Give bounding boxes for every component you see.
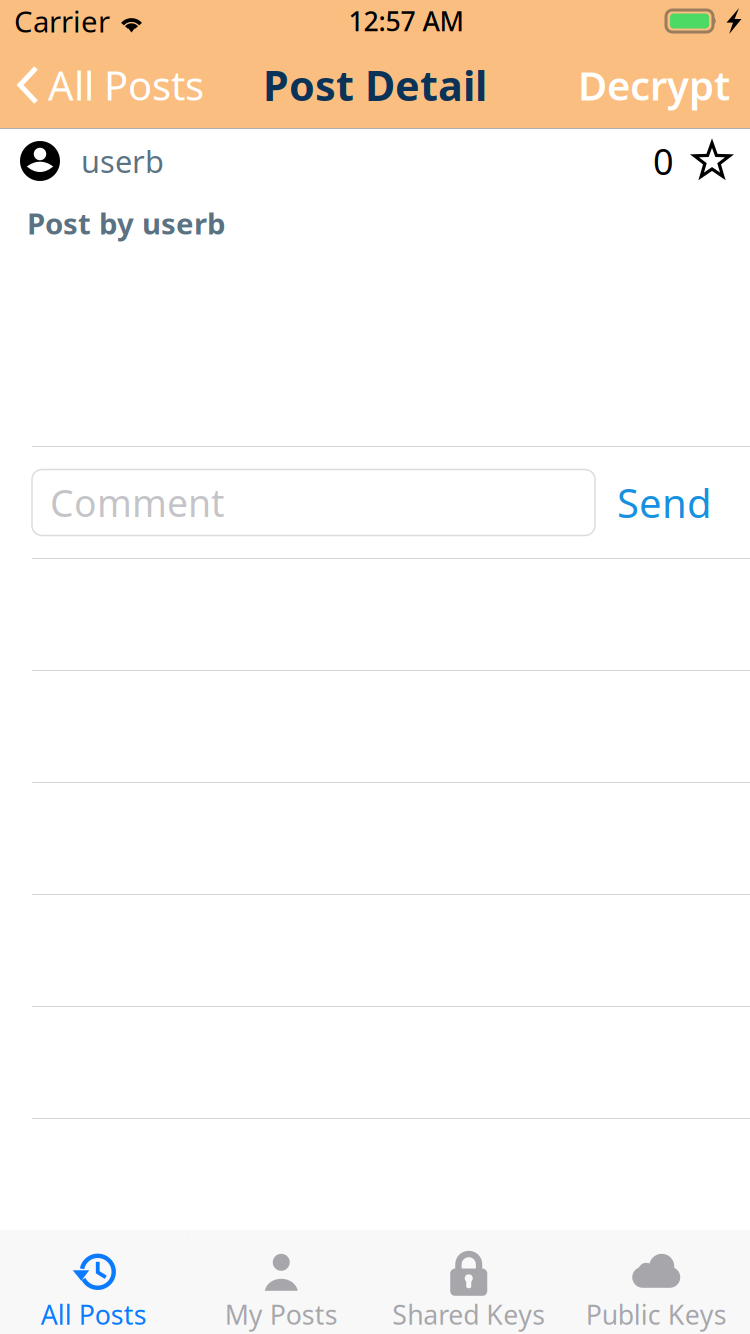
staticText: Carrier (14, 1, 110, 40)
staticText: 0 (653, 137, 674, 185)
staticText: Send (617, 476, 712, 529)
staticText: Comment (50, 478, 224, 527)
button[interactable]: All Posts (0, 50, 204, 119)
staticText: 12:57 AM (348, 3, 463, 39)
button[interactable]: My Posts (187, 1234, 375, 1334)
button[interactable]: Shared Keys (375, 1234, 562, 1334)
staticText: userb (81, 141, 164, 181)
button[interactable]: Send (617, 476, 712, 529)
staticText: All Posts (41, 1297, 147, 1332)
staticText: Shared Keys (392, 1297, 545, 1332)
staticText: Post by userb (27, 203, 226, 242)
staticText: My Posts (225, 1297, 338, 1332)
button[interactable]: All Posts (0, 1234, 187, 1334)
button[interactable]: Decrypt (578, 50, 750, 119)
button[interactable]: Favourite post (692, 141, 732, 181)
staticText: Public Keys (586, 1297, 727, 1332)
button[interactable]: Public Keys (562, 1234, 750, 1334)
staticText: Decrypt (578, 58, 730, 111)
staticText: All Posts (48, 58, 204, 111)
staticText: Post Detail (263, 58, 487, 112)
